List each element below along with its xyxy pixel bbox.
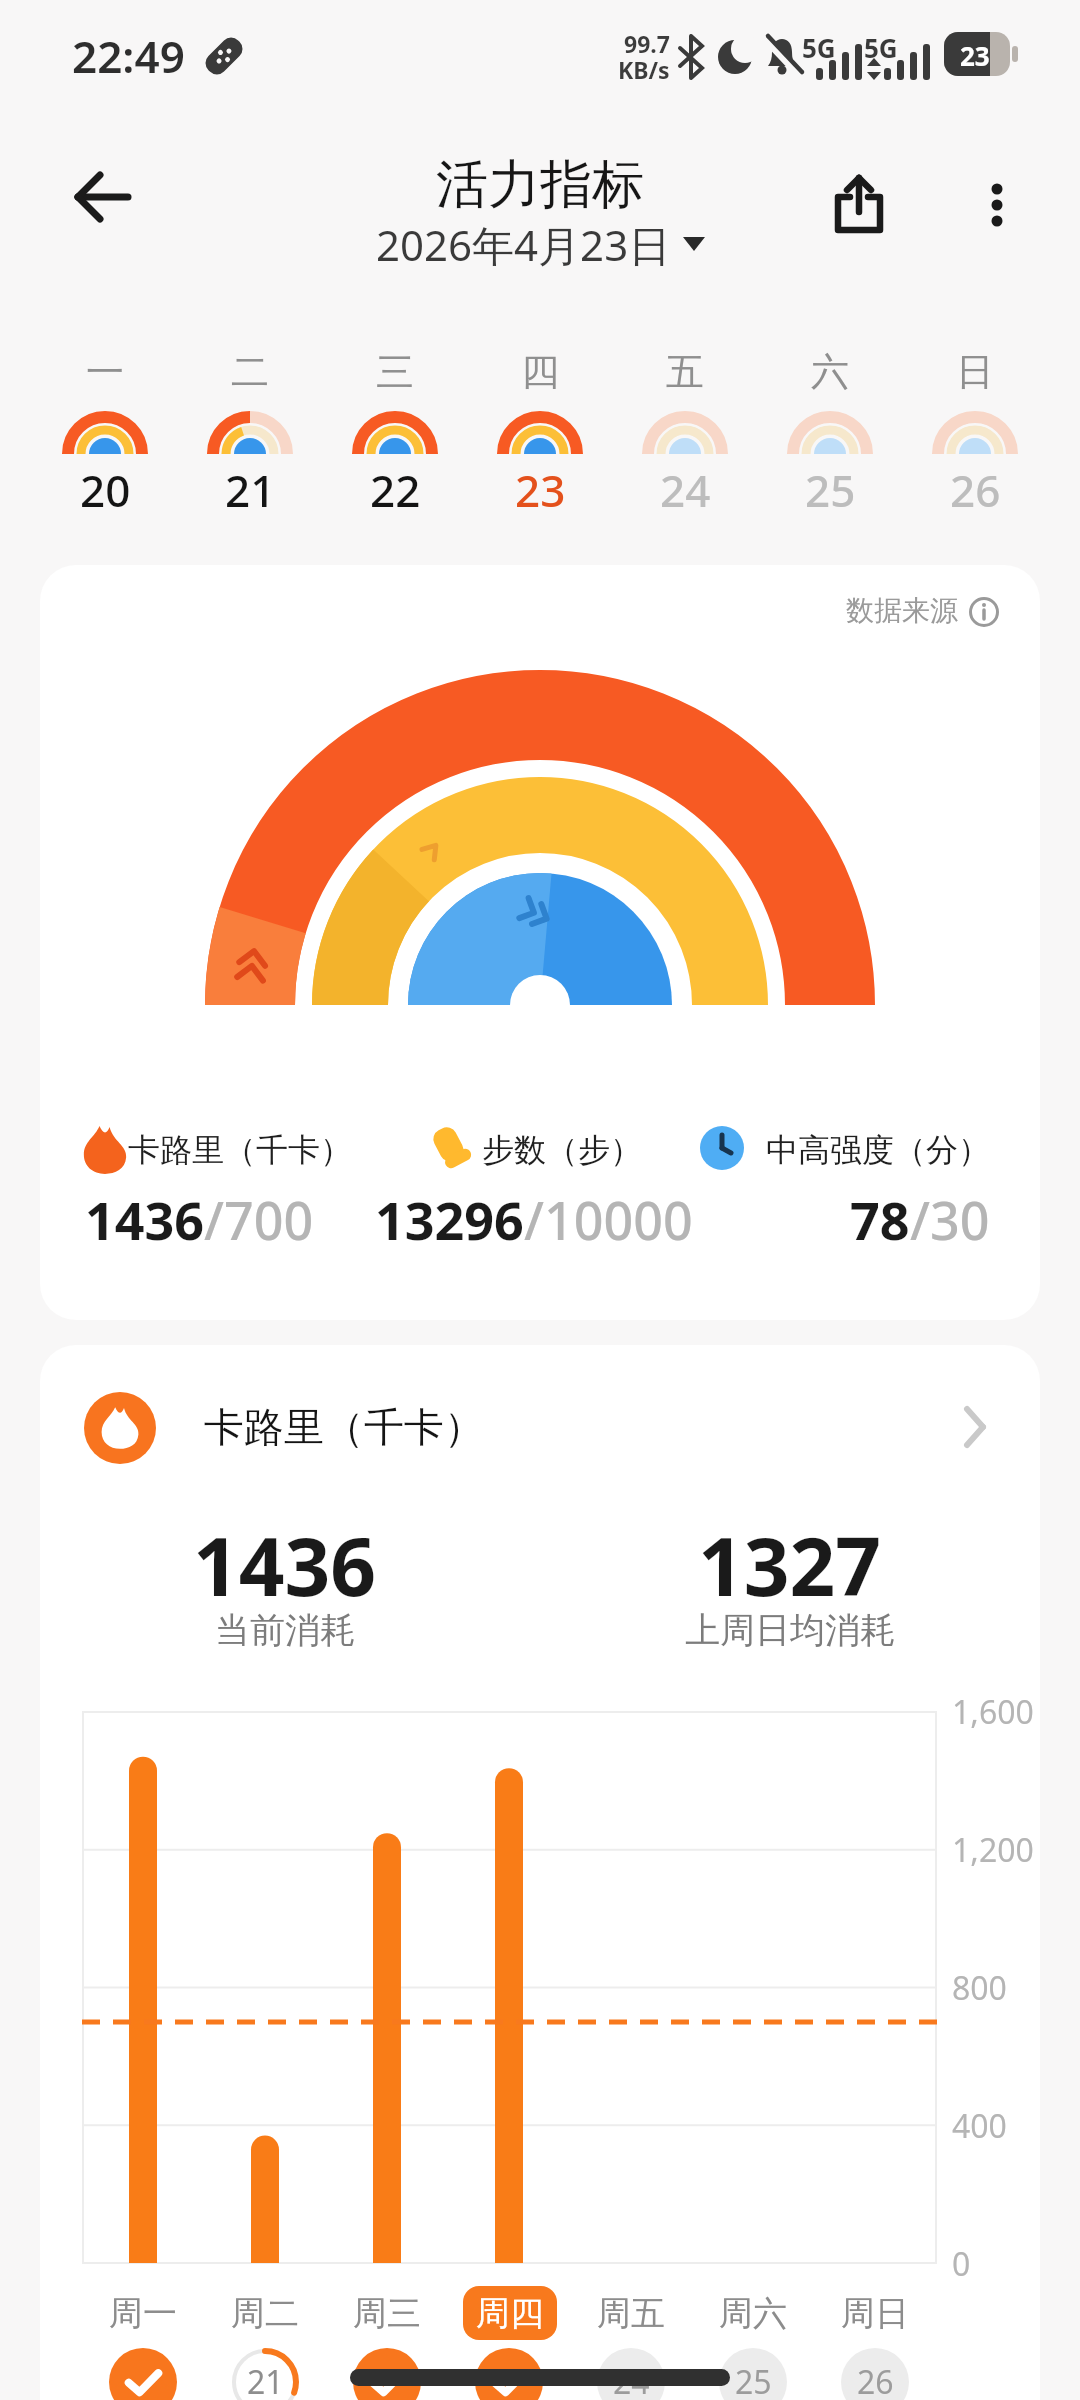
button[interactable]: [841, 2348, 909, 2400]
button[interactable]: [824, 166, 896, 242]
button[interactable]: [597, 2348, 665, 2400]
button[interactable]: 周一: [82, 2289, 204, 2337]
button[interactable]: [40, 1345, 1040, 1505]
staticText: 400: [952, 2104, 1007, 2148]
staticText: 24: [613, 2360, 650, 2400]
staticText: 日: [956, 348, 994, 394]
button[interactable]: [231, 2348, 299, 2400]
button[interactable]: 周二: [204, 2289, 326, 2337]
staticText: /30: [910, 1184, 990, 1248]
staticText: 步数（步）: [482, 1130, 642, 1170]
staticText: 中高强度（分）: [766, 1130, 990, 1170]
button[interactable]: [353, 2348, 421, 2400]
staticText: 三: [376, 348, 414, 394]
button[interactable]: 周六: [692, 2289, 814, 2337]
staticText: 一: [86, 348, 124, 394]
staticText: 22:49: [72, 26, 185, 80]
staticText: KB/s: [618, 54, 670, 80]
button[interactable]: 数据来源: [600, 586, 958, 634]
staticText: 二: [231, 348, 269, 394]
staticText: 上周日均消耗: [685, 1608, 895, 1652]
staticText: 2026年4月23日: [376, 216, 671, 272]
staticText: 卡路里（千卡）: [204, 1402, 484, 1452]
staticText: 周二: [231, 2292, 299, 2335]
staticText: 1436: [193, 1510, 377, 1606]
button[interactable]: [333, 340, 457, 520]
staticText: 20: [80, 460, 131, 512]
staticText: 六: [811, 348, 849, 394]
staticText: 数据来源: [846, 593, 958, 628]
staticText: 周四: [476, 2292, 544, 2335]
staticText: 5G: [802, 30, 836, 58]
staticText: 78: [850, 1184, 910, 1248]
staticText: /10000: [524, 1184, 693, 1255]
staticText: 99.7: [624, 28, 670, 54]
staticText: 周日: [841, 2292, 909, 2335]
button[interactable]: [70, 168, 134, 226]
staticText: 活力指标: [436, 152, 644, 218]
button[interactable]: 周日: [814, 2289, 936, 2337]
staticText: 21: [247, 2360, 284, 2400]
button[interactable]: 周四: [463, 2286, 557, 2340]
staticText: 1327: [698, 1510, 882, 1606]
staticText: 0: [952, 2242, 971, 2286]
staticText: 当前消耗: [215, 1608, 355, 1652]
staticText: 五: [666, 348, 704, 394]
staticText: 四: [521, 348, 559, 394]
staticText: 24: [660, 460, 711, 512]
staticText: 1436: [85, 1184, 204, 1255]
staticText: 23: [960, 38, 990, 73]
button[interactable]: 周三: [326, 2289, 448, 2337]
staticText: 26: [950, 460, 1001, 512]
staticText: 1,200: [952, 1828, 1034, 1872]
button[interactable]: 2026年4月23日: [290, 216, 790, 272]
button[interactable]: 周五: [570, 2289, 692, 2337]
button[interactable]: [43, 340, 167, 520]
staticText: 卡路里（千卡）: [128, 1130, 352, 1170]
button[interactable]: [719, 2348, 787, 2400]
button[interactable]: [623, 340, 747, 520]
button[interactable]: [475, 2348, 543, 2400]
staticText: 周一: [109, 2292, 177, 2335]
staticText: 25: [805, 460, 856, 512]
staticText: 21: [225, 460, 276, 512]
staticText: 周三: [353, 2292, 421, 2335]
staticText: /700: [204, 1184, 314, 1255]
staticText: 800: [952, 1966, 1007, 2010]
button[interactable]: [768, 340, 892, 520]
staticText: 13296: [375, 1184, 524, 1255]
staticText: 26: [857, 2360, 894, 2400]
staticText: 周六: [719, 2292, 787, 2335]
staticText: 周五: [597, 2292, 665, 2335]
staticText: 25: [735, 2360, 772, 2400]
button[interactable]: [913, 340, 1037, 520]
staticText: 22: [370, 460, 421, 512]
button[interactable]: [478, 340, 602, 520]
button[interactable]: [109, 2348, 177, 2400]
staticText: 5G: [864, 30, 898, 58]
staticText: 1,600: [952, 1690, 1034, 1734]
button[interactable]: [962, 166, 1032, 242]
button[interactable]: [956, 584, 1008, 636]
staticText: 23: [515, 460, 566, 512]
button[interactable]: [188, 340, 312, 520]
